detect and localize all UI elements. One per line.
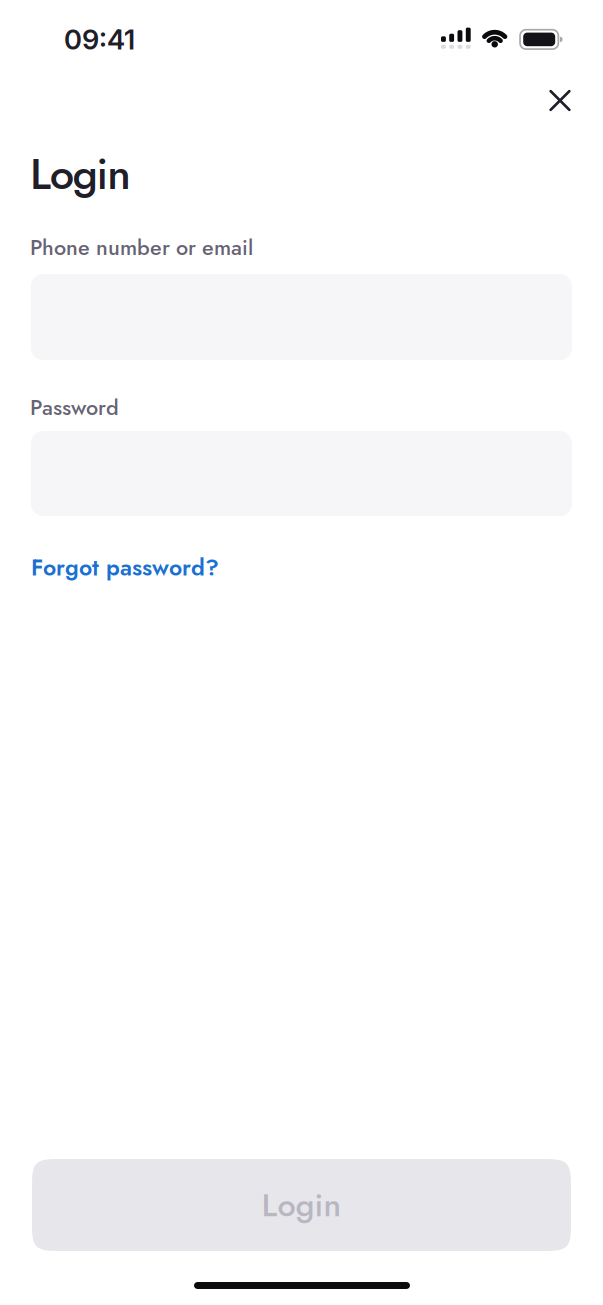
staticText: Login [30, 143, 131, 205]
staticText: Login [261, 1182, 341, 1228]
staticText: 09:41 [64, 23, 135, 56]
button[interactable]: Login [32, 1159, 571, 1251]
staticText: Phone number or email [30, 232, 253, 263]
button[interactable]: Forgot password? [31, 550, 331, 584]
staticText: Password [30, 392, 119, 423]
staticText: Forgot password? [31, 551, 219, 584]
button[interactable]: Close [539, 80, 580, 121]
